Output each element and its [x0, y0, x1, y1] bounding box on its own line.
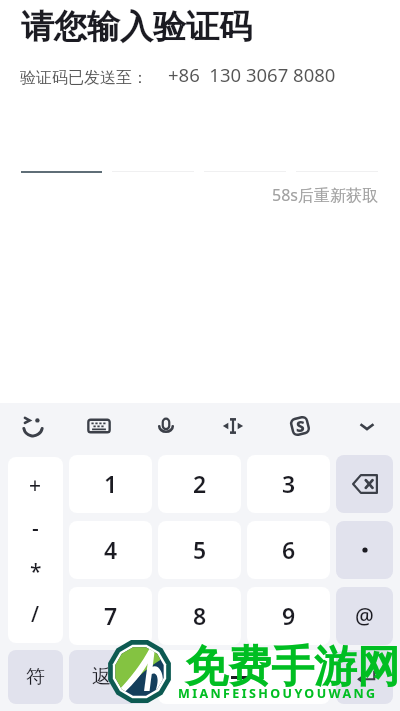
staticText: 6	[282, 534, 296, 565]
button[interactable]: Emoji	[0, 403, 66, 449]
staticText: MIANFEISHOUYOUWANG	[178, 685, 378, 702]
staticText: 5	[193, 534, 207, 565]
button[interactable]: +	[8, 457, 63, 643]
button[interactable]: 6	[247, 521, 330, 579]
staticText: 返回	[92, 665, 130, 689]
button[interactable]: 4	[69, 521, 152, 579]
button[interactable]: 2	[158, 455, 241, 513]
button[interactable]: 返回	[69, 650, 152, 704]
button[interactable]: 8	[158, 587, 241, 645]
button[interactable]: Space	[158, 650, 330, 704]
button[interactable]: 3	[247, 455, 330, 513]
button[interactable]: Sogou input settings	[266, 403, 333, 449]
button[interactable]: Backspace	[336, 455, 393, 513]
staticText: 2	[193, 468, 207, 499]
staticText: 4	[104, 534, 118, 565]
staticText: 免费手游网	[185, 640, 400, 694]
button[interactable]: Hide keyboard	[333, 403, 400, 449]
button[interactable]: Keyboard layout	[66, 403, 132, 449]
staticText: -	[32, 514, 39, 543]
button[interactable]: 9	[247, 587, 330, 645]
button[interactable]: Dot	[336, 521, 393, 579]
staticText: *	[30, 557, 42, 586]
button[interactable]: 符	[8, 650, 63, 704]
staticText: 8	[193, 600, 207, 631]
staticText: +86 130 3067 8080	[168, 62, 336, 87]
staticText: S	[296, 416, 305, 436]
button[interactable]: 1	[69, 455, 152, 513]
staticText: 请您输入验证码	[21, 6, 252, 48]
staticText: 3	[282, 468, 296, 499]
staticText: 符	[26, 665, 45, 689]
staticText: 7	[104, 600, 118, 631]
staticText: +	[29, 471, 42, 500]
staticText: 验证码已发送至：	[20, 68, 148, 88]
button[interactable]: 5	[158, 521, 241, 579]
staticText: 9	[282, 600, 296, 631]
button[interactable]: Enter	[336, 650, 393, 704]
staticText: /	[31, 600, 40, 629]
button[interactable]: 58s后重新获取	[272, 184, 378, 206]
staticText: @	[355, 602, 374, 631]
button[interactable]: Move cursor	[199, 403, 266, 449]
button[interactable]: Voice input	[132, 403, 199, 449]
button[interactable]: 7	[69, 587, 152, 645]
staticText: 1	[104, 468, 118, 499]
button[interactable]: @	[336, 587, 393, 645]
